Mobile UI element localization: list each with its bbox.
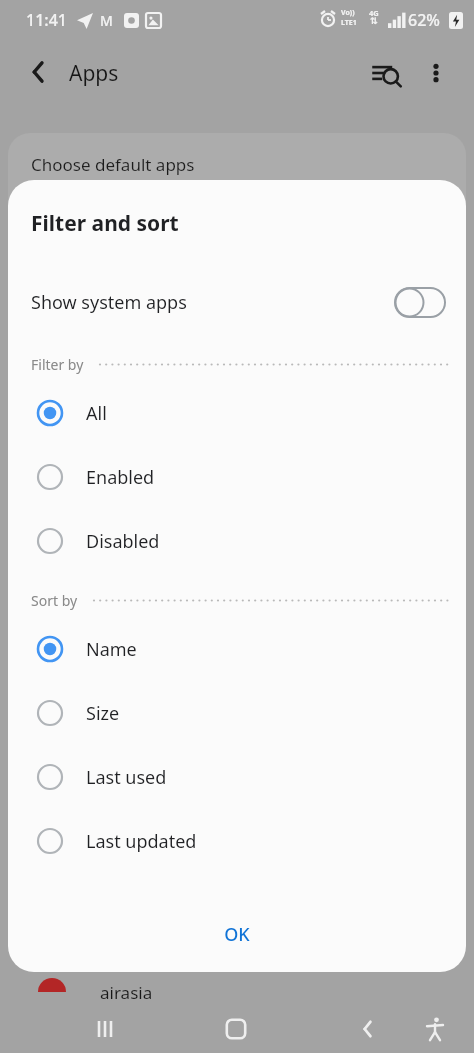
staticText: Apps (69, 59, 119, 88)
staticText: Disabled (86, 529, 160, 554)
button[interactable]: Last used (8, 745, 466, 809)
button[interactable]: Show system apps toggle (394, 287, 446, 318)
button[interactable]: Last updated (8, 809, 466, 873)
staticText: Size (86, 701, 120, 726)
button[interactable]: Enabled (8, 445, 466, 509)
button[interactable]: Size (8, 681, 466, 745)
button[interactable]: Back (348, 1009, 388, 1049)
button[interactable]: Accessibility (415, 1009, 455, 1049)
staticText: Show system apps (31, 290, 187, 315)
button[interactable]: Name (8, 617, 466, 681)
staticText: Last updated (86, 829, 197, 854)
staticText: Filter by (31, 355, 84, 374)
button[interactable]: Back (20, 52, 60, 92)
staticText: Last used (86, 765, 167, 790)
staticText: ⇅ (370, 16, 378, 26)
staticText: Vo)) (341, 8, 355, 18)
staticText: 11:41 (26, 9, 67, 31)
button[interactable]: OK (8, 896, 466, 972)
staticText: Choose default apps (31, 153, 195, 176)
staticText: Filter and sort (31, 209, 179, 238)
button[interactable]: More options (415, 52, 457, 94)
staticText: Sort by (31, 591, 78, 610)
button[interactable]: Recent apps (85, 1009, 125, 1049)
staticText: LTE1 (341, 18, 357, 28)
button[interactable]: Show system apps (8, 280, 466, 324)
staticText: M (100, 11, 113, 30)
staticText: Enabled (86, 465, 155, 490)
staticText: airasia (100, 981, 153, 1004)
staticText: 62% (408, 9, 440, 31)
button[interactable]: Search (363, 52, 405, 94)
button[interactable]: Home (216, 1009, 256, 1049)
staticText: 4G (369, 8, 379, 18)
staticText: OK (224, 922, 250, 947)
button[interactable]: All (8, 381, 466, 445)
staticText: Name (86, 637, 137, 662)
staticText: All (86, 401, 107, 426)
button[interactable]: Disabled (8, 509, 466, 573)
